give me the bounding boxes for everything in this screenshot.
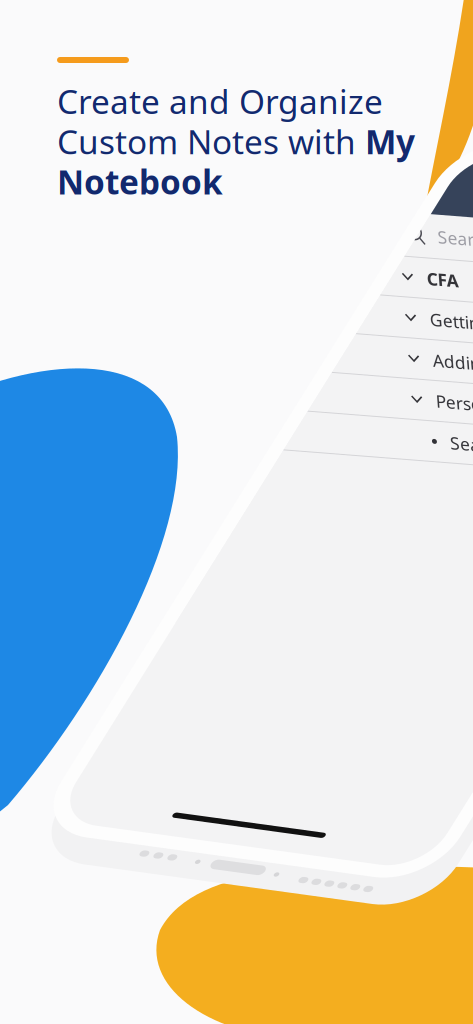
staticText: Search Notes xyxy=(290,299,398,322)
staticText: Custom Notes with My xyxy=(57,119,415,164)
staticText: Notebook xyxy=(57,159,223,204)
staticText: Search xyxy=(293,92,349,115)
staticText: Create and Organize xyxy=(57,79,383,123)
staticText: CFA xyxy=(279,135,311,158)
